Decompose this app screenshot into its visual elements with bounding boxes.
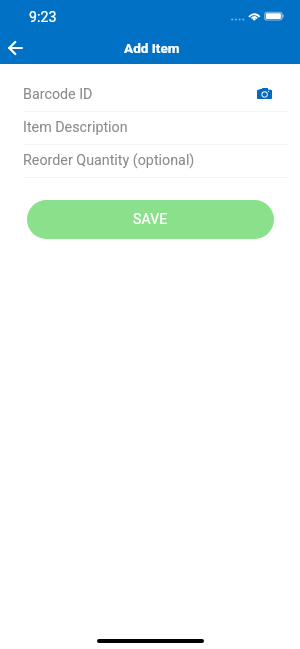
staticText: Reorder Quantity (optional) [23, 152, 195, 169]
button[interactable]: SAVE [27, 200, 274, 239]
staticText: SAVE [133, 211, 168, 227]
button[interactable]: Reorder Quantity (optional) [0, 148, 300, 178]
button[interactable]: Item Description [0, 115, 300, 145]
button[interactable]: Back [3, 36, 27, 60]
staticText: Item Description [23, 119, 128, 136]
staticText: Barcode ID [23, 86, 93, 103]
button[interactable]: Barcode ID [0, 82, 300, 112]
staticText: 9:23 [29, 9, 57, 26]
button[interactable]: Scan barcode [254, 85, 274, 101]
staticText: Add Item [124, 40, 180, 56]
